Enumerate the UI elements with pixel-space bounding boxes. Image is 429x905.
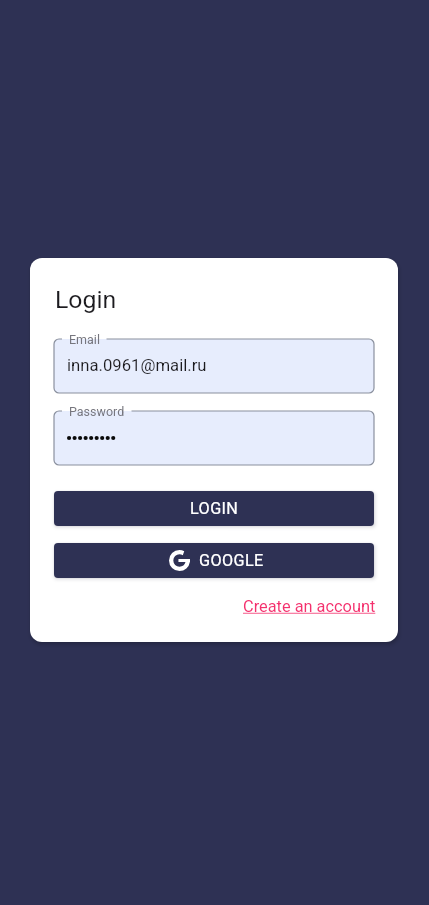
- staticText: GOOGLE: [199, 551, 264, 570]
- button[interactable]: inna.0961@mail.ru: [54, 339, 374, 393]
- button[interactable]: Create an account: [242, 595, 377, 618]
- staticText: LOGIN: [190, 499, 239, 518]
- button[interactable]: Google logo: [54, 543, 374, 578]
- button[interactable]: [54, 411, 374, 465]
- other: Google logo: [169, 550, 190, 571]
- staticText: Login: [55, 285, 117, 314]
- staticText: Email: [69, 332, 100, 347]
- staticText: Create an account: [243, 597, 376, 616]
- staticText: inna.0961@mail.ru: [67, 356, 207, 376]
- button[interactable]: LOGIN: [54, 491, 374, 526]
- staticText: Password: [69, 404, 125, 419]
